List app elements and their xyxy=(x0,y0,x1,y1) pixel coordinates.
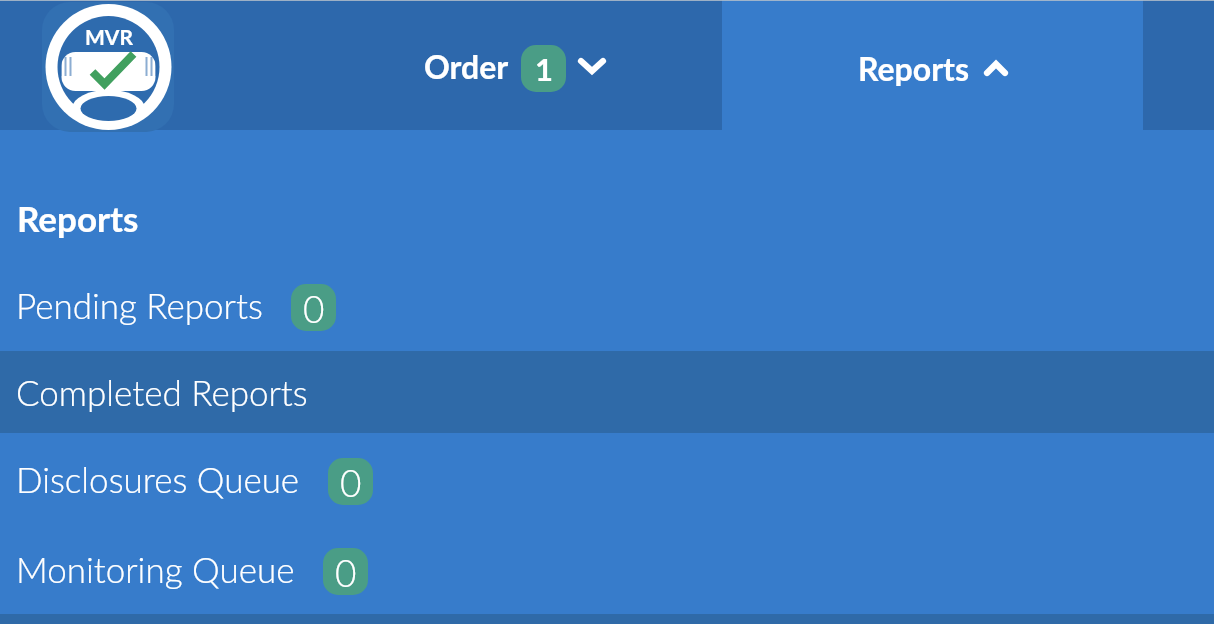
staticText: 0 xyxy=(335,550,357,594)
staticText: 1 xyxy=(535,50,553,87)
button[interactable]: Reports xyxy=(722,0,1143,140)
staticText: Reports xyxy=(17,197,139,239)
staticText: Pending Reports xyxy=(16,284,263,326)
staticText: 0 xyxy=(340,460,362,504)
button[interactable]: Monitoring Queue xyxy=(0,524,1214,612)
staticText: Disclosures Queue xyxy=(16,458,300,500)
staticText: Reports xyxy=(858,49,970,87)
button[interactable]: Completed Reports xyxy=(0,351,1214,433)
staticText: Monitoring Queue xyxy=(16,548,295,590)
button[interactable]: Order xyxy=(410,0,620,130)
staticText: 0 xyxy=(303,286,325,330)
staticText: Order xyxy=(424,47,509,85)
button[interactable]: Pending Reports xyxy=(0,260,1214,348)
staticText: Completed Reports xyxy=(16,371,308,413)
staticText: MVR xyxy=(85,24,133,49)
button[interactable]: MVR xyxy=(42,2,174,132)
button[interactable]: Disclosures Queue xyxy=(0,434,1214,522)
